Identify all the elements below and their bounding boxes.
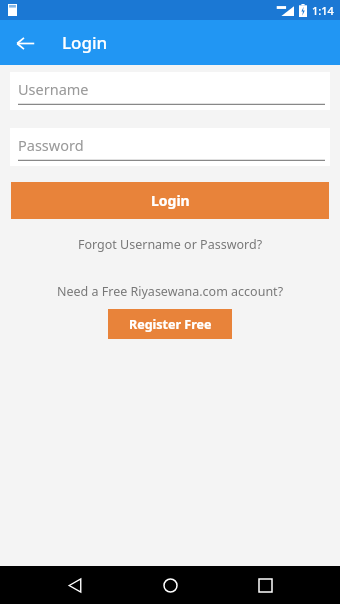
button[interactable]: Register Free [108,309,232,339]
staticText: Login [62,31,108,54]
staticText: Username [18,79,89,99]
staticText: Password [18,135,84,155]
button[interactable]: Login [11,182,329,219]
button[interactable]: Username [10,72,330,110]
button[interactable]: Home [150,566,190,604]
staticText: Register Free [129,316,212,333]
staticText: Login [151,191,190,210]
staticText: Need a Free Riyasewana.com account? [0,283,340,300]
button[interactable]: Password [10,128,330,166]
button[interactable]: Recent apps [245,566,285,604]
button[interactable]: Back [10,28,40,58]
button[interactable]: Back [55,566,95,604]
button[interactable]: Forgot Username or Password? [0,232,340,257]
staticText: 1:14 [312,3,334,18]
